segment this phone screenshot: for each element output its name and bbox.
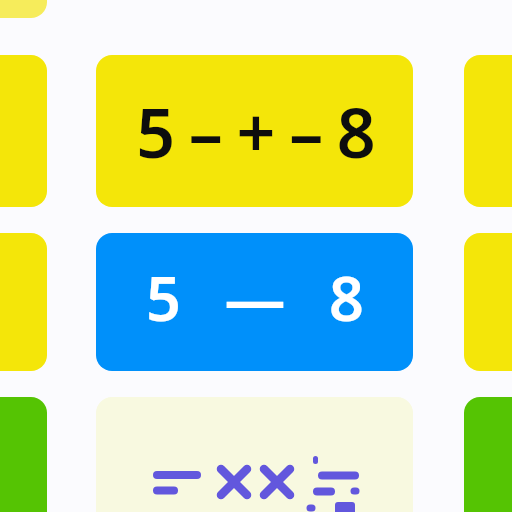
button[interactable]: Previous result (0, 397, 47, 512)
button[interactable]: Next question (464, 55, 512, 207)
button[interactable]: Previous expression (0, 233, 47, 371)
button[interactable]: Next expression (464, 233, 512, 371)
button[interactable]: 5 — 8 (96, 233, 413, 371)
button[interactable]: Operator keys (96, 397, 413, 512)
button[interactable]: Next result (464, 397, 512, 512)
button[interactable]: Earlier question (0, 0, 47, 18)
staticText: 5 – + – 8 (136, 85, 374, 178)
button[interactable]: Previous question (0, 55, 47, 207)
staticText: 5 — 8 (146, 256, 363, 339)
button[interactable]: 5 – + – 8 (96, 55, 413, 207)
